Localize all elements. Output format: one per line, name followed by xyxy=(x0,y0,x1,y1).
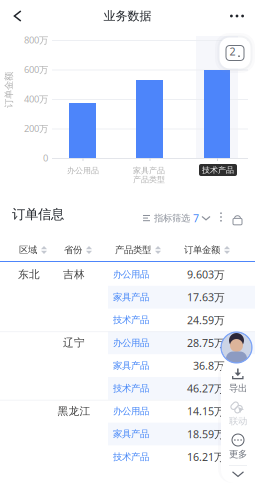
staticText: 200万 xyxy=(24,122,48,135)
staticText: 16.21万 xyxy=(187,450,225,464)
staticText: 产品类型 xyxy=(133,175,165,184)
staticText: 0 xyxy=(43,152,48,164)
button[interactable]: 家具产品 xyxy=(113,354,165,377)
button[interactable]: 办公用品 xyxy=(113,331,165,354)
staticText: 800万 xyxy=(24,34,48,46)
staticText: 区域 xyxy=(19,244,37,256)
staticText: 28.75万 xyxy=(187,336,225,350)
staticText: 46.27万 xyxy=(187,381,225,395)
staticText: 联动 xyxy=(229,415,247,427)
button[interactable]: 技术产品 xyxy=(113,445,165,468)
staticText: 家具产品 xyxy=(113,428,149,440)
staticText: 14.15万 xyxy=(187,404,225,418)
button[interactable]: 技术产品 xyxy=(113,309,165,331)
button[interactable]: 省份 xyxy=(52,239,104,261)
staticText: 技术产品 xyxy=(113,314,149,326)
button[interactable]: 导出 xyxy=(221,368,255,394)
staticText: 7 xyxy=(193,211,199,225)
staticText: 办公用品 xyxy=(113,337,149,349)
staticText: 家具产品 xyxy=(113,291,149,303)
staticText: 黑龙江 xyxy=(57,405,90,418)
button[interactable]: 技术产品 xyxy=(113,377,165,400)
staticText: 省份 xyxy=(64,244,82,256)
staticText: 技术产品 xyxy=(202,165,234,175)
staticText: 吉林 xyxy=(63,268,85,281)
button[interactable]: 家具产品 xyxy=(113,286,165,309)
button[interactable]: 办公用品 xyxy=(113,263,165,286)
button[interactable]: 联动 xyxy=(221,401,255,427)
button[interactable]: Account xyxy=(221,332,252,363)
staticText: 技术产品 xyxy=(113,383,149,394)
staticText: 18.59万 xyxy=(187,427,225,441)
staticText: 更多 xyxy=(229,448,247,460)
staticText: 订单信息 xyxy=(12,206,64,222)
button[interactable]: 指标筛选 xyxy=(143,211,210,225)
button[interactable]: More options xyxy=(219,0,255,32)
staticText: 指标筛选 xyxy=(154,212,190,224)
staticText: 技术产品 xyxy=(113,451,149,463)
button[interactable]: Collapse xyxy=(221,467,255,481)
button[interactable]: 区域 xyxy=(7,239,59,261)
staticText: 辽宁 xyxy=(63,336,85,349)
staticText: 24.59万 xyxy=(187,313,225,327)
staticText: 产品类型 xyxy=(115,244,151,256)
button[interactable]: 更多 xyxy=(221,434,255,460)
staticText: 办公用品 xyxy=(113,405,149,417)
staticText: 600万 xyxy=(24,63,48,76)
staticText: 东北 xyxy=(18,268,40,281)
staticText: 400万 xyxy=(24,93,48,105)
button[interactable]: Lock xyxy=(232,211,243,223)
staticText: 订单金额 xyxy=(184,244,220,256)
staticText: 17.63万 xyxy=(187,290,225,304)
staticText: 2 xyxy=(229,44,235,58)
button[interactable]: Back xyxy=(0,0,36,32)
staticText: 36.8万 xyxy=(193,358,225,373)
staticText: 办公用品 xyxy=(113,269,149,280)
button[interactable]: 订单金额 xyxy=(181,239,233,261)
staticText: 业务数据 xyxy=(103,9,151,23)
staticText: 办公用品 xyxy=(67,166,99,175)
button[interactable]: 家具产品 xyxy=(113,423,165,445)
button[interactable]: Chart type xyxy=(215,33,255,73)
staticText: 导出 xyxy=(229,382,247,394)
staticText: 家具产品 xyxy=(113,360,149,371)
staticText: 订单金额 xyxy=(0,84,27,96)
staticText: 家具产品 xyxy=(133,166,165,175)
button[interactable]: 产品类型 xyxy=(112,239,164,261)
staticText: 9.603万 xyxy=(187,267,225,281)
button[interactable]: 办公用品 xyxy=(113,400,165,423)
button[interactable]: Table options xyxy=(216,211,226,223)
